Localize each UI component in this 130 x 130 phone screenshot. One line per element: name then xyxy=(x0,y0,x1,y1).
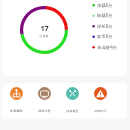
staticText: 机群概览 xyxy=(10,109,23,113)
button[interactable]: 未连接4台 xyxy=(89,42,123,52)
other: 故障中心 xyxy=(94,87,107,100)
staticText: 17 xyxy=(40,23,49,33)
button[interactable]: 卸载0台 xyxy=(89,10,123,20)
staticText: 台设备 xyxy=(39,34,49,38)
button[interactable]: 停机0台 xyxy=(89,21,123,31)
staticText: 卸载0台 xyxy=(97,12,113,18)
other: 机群概览 xyxy=(10,87,23,100)
button[interactable]: 能耗分析 xyxy=(30,84,58,115)
other: 设备保全 xyxy=(66,87,79,100)
staticText: 能耗分析 xyxy=(38,109,51,113)
staticText: 停机0台 xyxy=(97,23,113,29)
staticText: 故障中心 xyxy=(94,109,107,113)
button[interactable]: 异常0台 xyxy=(89,31,123,41)
button[interactable]: 故障中心 xyxy=(86,84,114,115)
button[interactable]: 机群概览 xyxy=(2,84,30,115)
other: 能耗分析 xyxy=(38,87,51,100)
staticText: 设备保全 xyxy=(66,109,79,113)
staticText: 加载0台 xyxy=(97,2,113,8)
staticText: 异常0台 xyxy=(97,33,113,39)
button[interactable]: 设备保全 xyxy=(58,84,86,115)
staticText: 未连接4台 xyxy=(97,44,118,50)
button[interactable]: 加载0台 xyxy=(89,0,123,10)
